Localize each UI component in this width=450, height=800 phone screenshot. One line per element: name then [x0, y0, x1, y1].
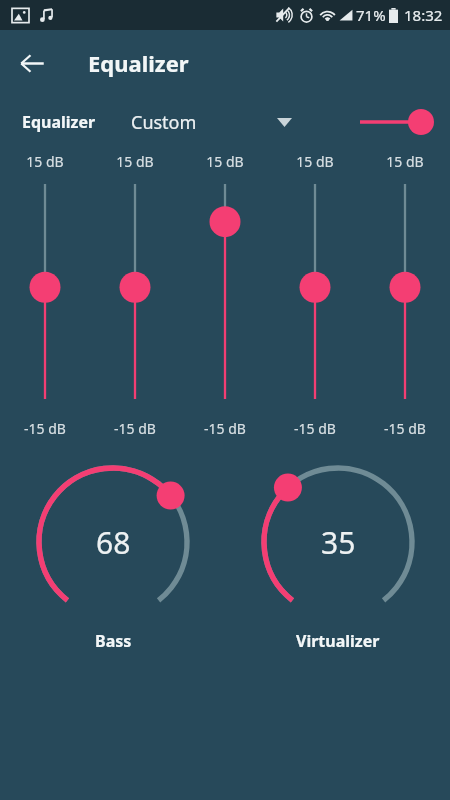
staticText: 15 dB [116, 152, 154, 171]
button[interactable]: Band 5 level [360, 174, 450, 414]
button[interactable]: Band 4 level [270, 174, 360, 414]
staticText: -15 dB [204, 419, 246, 438]
button[interactable]: Toggle equalizer [354, 100, 436, 144]
staticText: Bass [95, 630, 132, 652]
staticText: 71% [356, 5, 386, 25]
staticText: Custom [131, 110, 197, 135]
button[interactable]: Back [8, 39, 56, 87]
button[interactable]: Virtualizer 35 [250, 454, 426, 630]
staticText: -15 dB [294, 419, 336, 438]
staticText: Virtualizer [296, 630, 380, 652]
staticText: -15 dB [24, 419, 66, 438]
staticText: -15 dB [384, 419, 426, 438]
staticText: 15 dB [386, 152, 424, 171]
button[interactable]: Band 2 level [90, 174, 180, 414]
staticText: -15 dB [114, 419, 156, 438]
staticText: 15 dB [296, 152, 334, 171]
staticText: Equalizer [88, 48, 189, 78]
button[interactable]: Bass 68 [25, 454, 201, 630]
staticText: 68 [96, 522, 131, 563]
staticText: 35 [321, 522, 356, 563]
staticText: 18:32 [404, 5, 443, 25]
staticText: 15 dB [26, 152, 64, 171]
button[interactable]: Band 3 level [180, 174, 270, 414]
staticText: Equalizer [22, 111, 96, 133]
button[interactable]: Band 1 level [0, 174, 90, 414]
button[interactable]: Preset Custom [125, 99, 320, 145]
staticText: 15 dB [206, 152, 244, 171]
